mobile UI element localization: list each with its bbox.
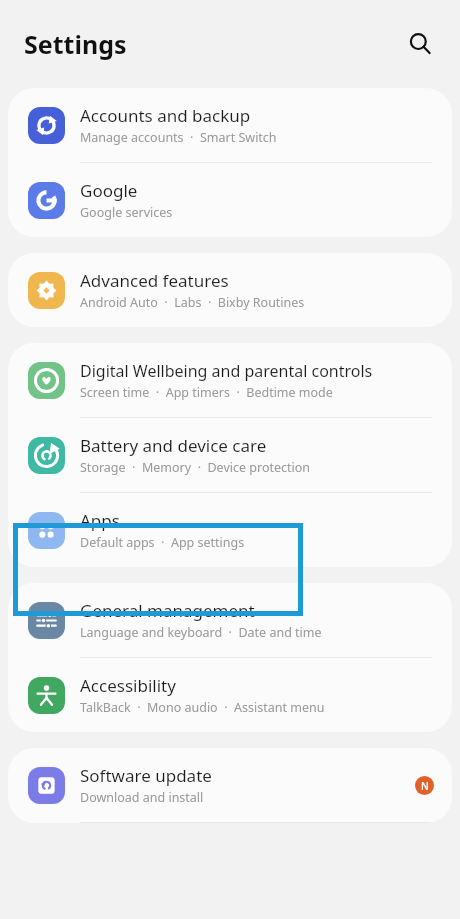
button[interactable]: Apps: [8, 493, 452, 567]
staticText: Advanced features: [80, 269, 229, 292]
staticText: Google: [80, 179, 138, 202]
staticText: Manage accounts · Smart Switch: [80, 129, 277, 146]
staticText: Digital Wellbeing and parental controls: [80, 360, 373, 382]
button[interactable]: Accounts and backup: [8, 88, 452, 163]
staticText: Storage · Memory · Device protection: [80, 459, 311, 476]
staticText: TalkBack · Mono audio · Assistant menu: [80, 699, 325, 716]
staticText: General management: [80, 599, 255, 622]
staticText: Settings: [24, 27, 127, 61]
button[interactable]: Google: [8, 163, 452, 237]
staticText: Default apps · App settings: [80, 534, 245, 551]
button[interactable]: Accessibility: [8, 658, 452, 732]
staticText: Battery and device care: [80, 434, 267, 457]
staticText: Screen time · App timers · Bedtime mode: [80, 384, 333, 401]
button[interactable]: Battery and device care: [8, 418, 452, 493]
staticText: Accounts and backup: [80, 104, 251, 127]
staticText: Google services: [80, 204, 173, 221]
staticText: Apps: [80, 509, 120, 532]
staticText: N: [421, 779, 429, 793]
button[interactable]: General management: [8, 583, 452, 658]
button[interactable]: Search: [400, 24, 440, 64]
staticText: Android Auto · Labs · Bixby Routines: [80, 294, 305, 311]
staticText: Accessibility: [80, 674, 176, 697]
button[interactable]: Digital Wellbeing and parental controls: [8, 343, 452, 418]
staticText: Download and install: [80, 789, 204, 806]
staticText: Software update: [80, 764, 212, 787]
button[interactable]: Advanced features: [8, 253, 452, 327]
staticText: Language and keyboard · Date and time: [80, 624, 322, 641]
button[interactable]: Software update: [8, 748, 452, 823]
